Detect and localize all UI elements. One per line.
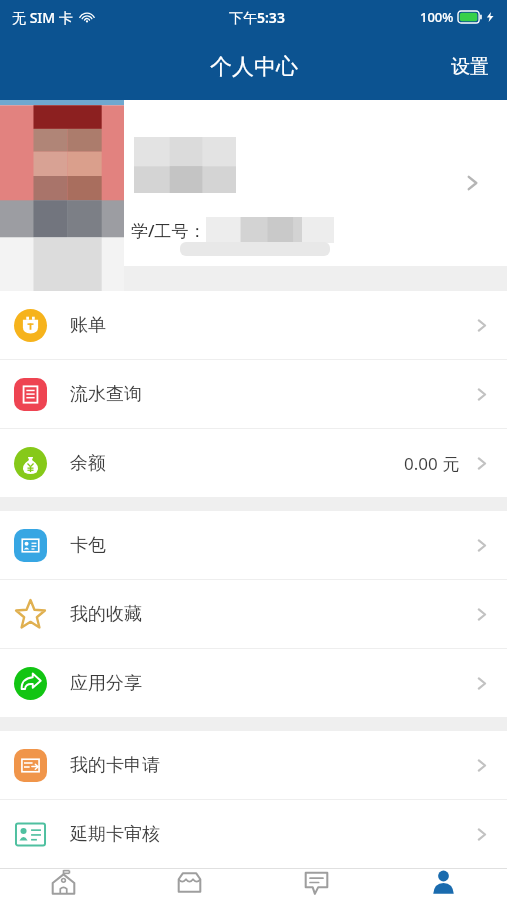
staticText: 卡包	[70, 534, 106, 557]
staticText: 余额	[70, 452, 106, 475]
staticText: 0.00 元	[404, 452, 460, 475]
button[interactable]: 学/工号：	[0, 100, 507, 266]
staticText: 设置	[451, 55, 489, 79]
button[interactable]: 我的	[380, 869, 507, 900]
button[interactable]: 流水查询	[0, 360, 507, 428]
staticText: 我的收藏	[70, 603, 142, 626]
button[interactable]: 功能	[126, 869, 253, 900]
button[interactable]: 我的卡申请	[0, 731, 507, 799]
staticText: 个人中心	[210, 53, 298, 81]
staticText: 无 SIM 卡	[12, 8, 73, 27]
staticText: 我的卡申请	[70, 754, 160, 777]
button[interactable]: 我的收藏	[0, 580, 507, 648]
button[interactable]: 余额	[0, 429, 507, 497]
staticText: 下午5:33	[229, 8, 285, 27]
button[interactable]: 卡包	[0, 511, 507, 579]
button[interactable]: 账单	[0, 291, 507, 359]
button[interactable]: 首页	[0, 869, 126, 900]
staticText: 应用分享	[70, 672, 142, 695]
button[interactable]: 延期卡审核	[0, 800, 507, 868]
staticText: 延期卡审核	[70, 823, 160, 846]
staticText: 学/工号：	[131, 219, 206, 242]
button[interactable]: 应用分享	[0, 649, 507, 717]
button[interactable]: 设置	[433, 43, 507, 91]
staticText: 100%	[420, 8, 454, 26]
staticText: 流水查询	[70, 383, 142, 406]
staticText: 账单	[70, 314, 106, 337]
button[interactable]: 消息	[253, 869, 380, 900]
